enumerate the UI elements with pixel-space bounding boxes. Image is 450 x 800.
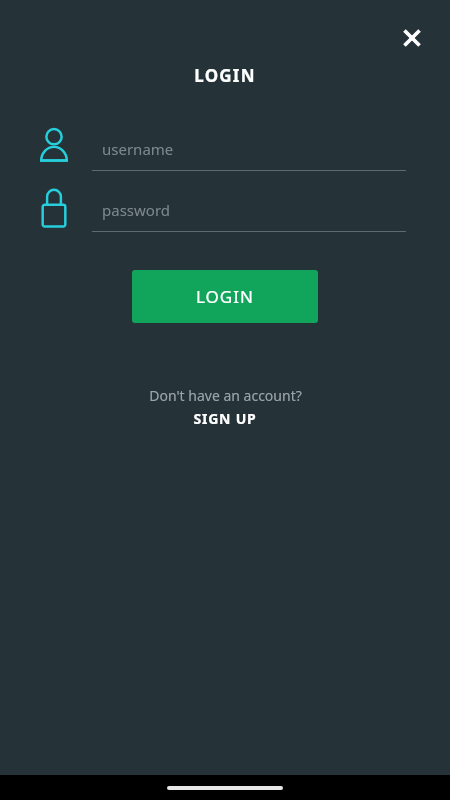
staticText: Don't have an account? xyxy=(149,386,302,405)
staticText: password xyxy=(102,200,170,220)
staticText: SIGN UP xyxy=(193,409,257,428)
button[interactable]: password xyxy=(92,192,406,232)
button[interactable]: LOGIN xyxy=(132,270,318,323)
button[interactable]: SIGN UP xyxy=(193,409,257,428)
button[interactable]: username xyxy=(92,131,406,171)
button[interactable]: Close xyxy=(392,18,432,58)
staticText: LOGIN xyxy=(196,285,254,308)
staticText: username xyxy=(102,139,174,159)
staticText: LOGIN xyxy=(194,64,256,87)
